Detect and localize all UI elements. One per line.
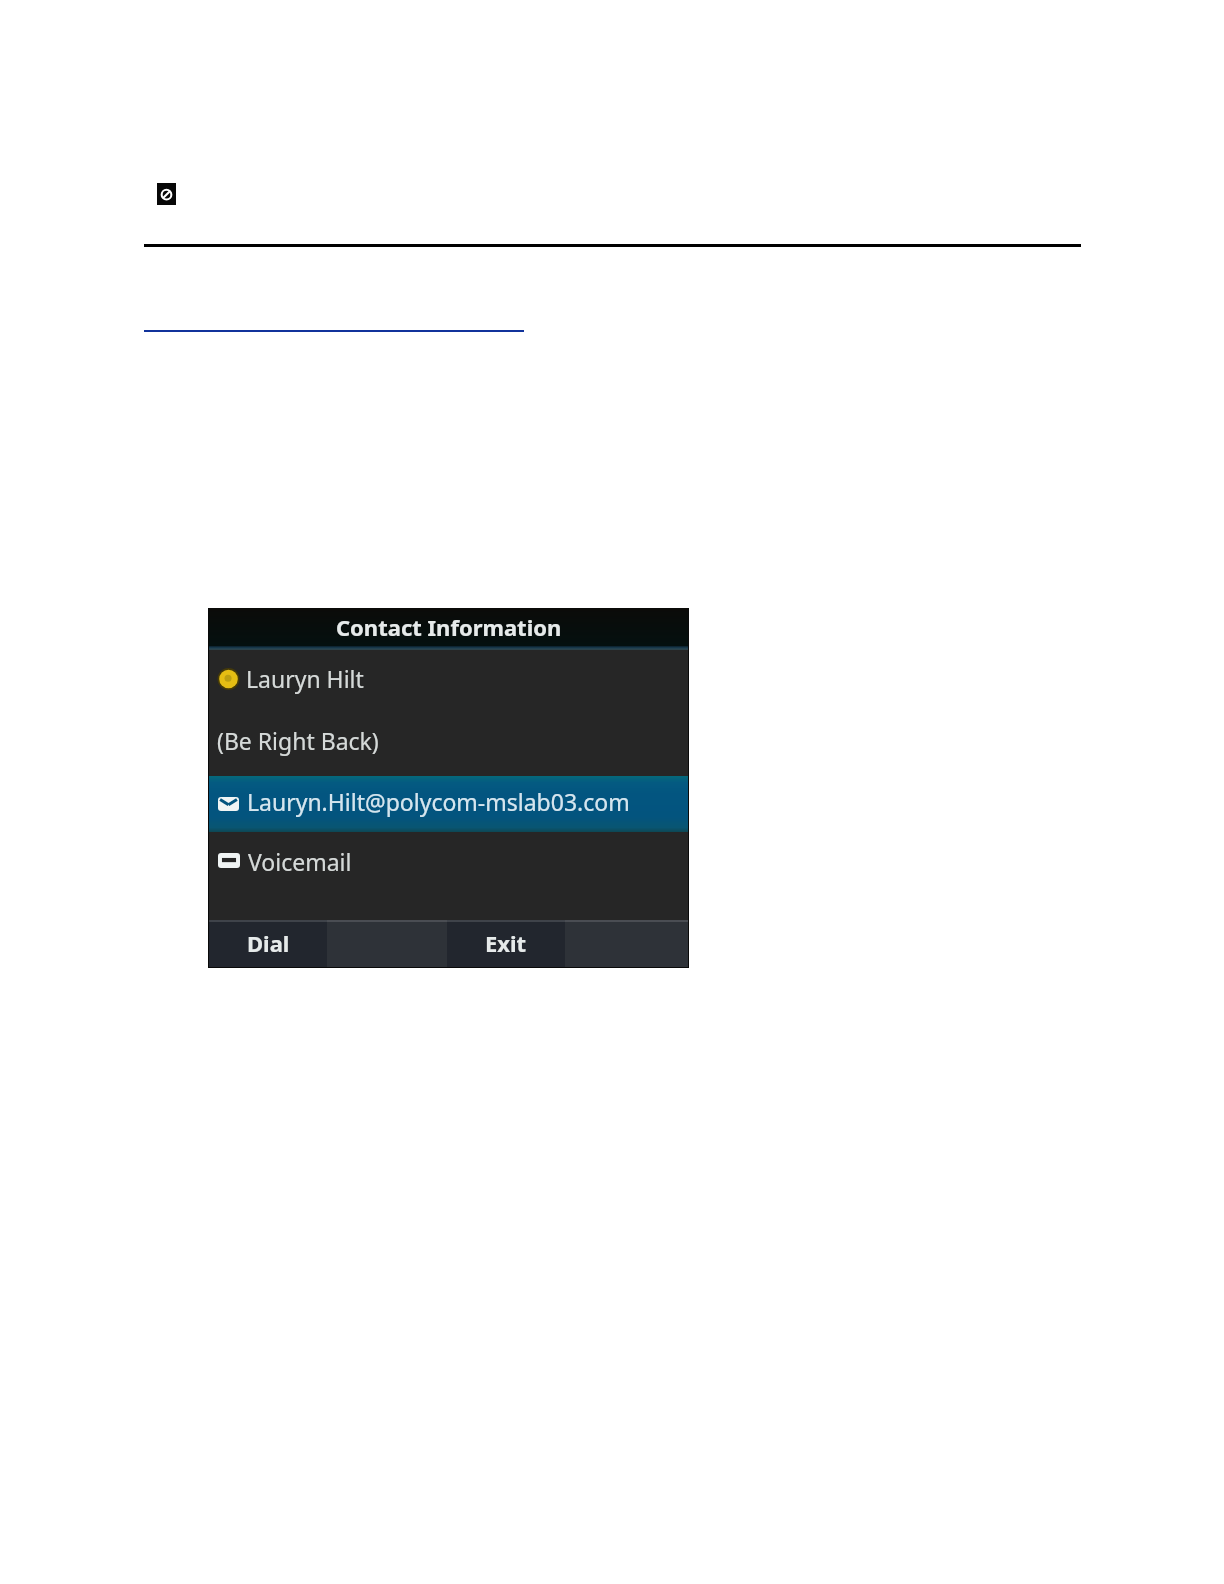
staticText: (Be Right Back) (217, 725, 379, 756)
button[interactable]: Lauryn.Hilt@polycom-mslab03.com (209, 776, 688, 832)
staticText: Dial (247, 928, 290, 958)
staticText: Voicemail (248, 846, 352, 877)
staticText: Lauryn.Hilt@polycom-mslab03.com (247, 786, 630, 817)
button[interactable]: Soft key (327, 920, 447, 967)
button[interactable]: (Be Right Back) (209, 712, 688, 776)
button[interactable]: Soft key (565, 920, 688, 967)
button[interactable]: Voicemail (209, 832, 688, 920)
staticText: Contact Information (336, 612, 562, 642)
staticText: Lauryn Hilt (246, 663, 364, 694)
button[interactable]: Missing image placeholder (157, 183, 176, 205)
button[interactable]: Lauryn Hilt (209, 650, 688, 712)
button[interactable]: Dial (209, 920, 327, 967)
button[interactable]: Exit (447, 920, 565, 967)
staticText: Exit (485, 928, 527, 958)
